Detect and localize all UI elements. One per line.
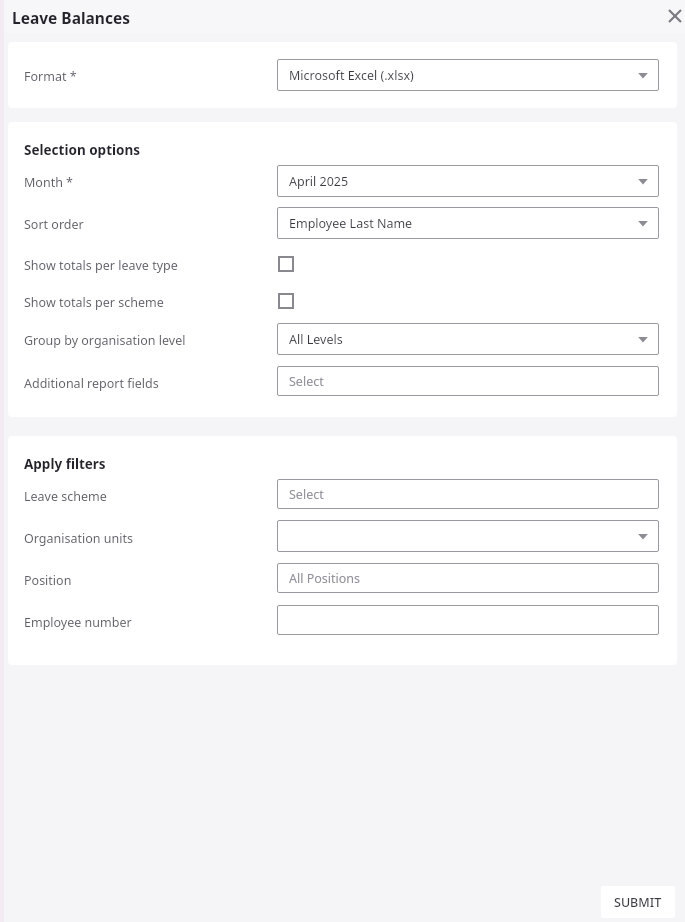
staticText: Sort order	[24, 216, 84, 233]
staticText: Leave Balances	[12, 7, 130, 28]
staticText: Show totals per leave type	[24, 257, 178, 274]
staticText: Select	[289, 486, 324, 503]
staticText: Format *	[24, 68, 77, 85]
staticText: Additional report fields	[24, 375, 159, 392]
staticText: Show totals per scheme	[24, 294, 164, 311]
button[interactable]: Input field	[277, 605, 659, 635]
staticText: April 2025	[289, 173, 349, 190]
staticText: Month *	[24, 174, 74, 191]
button[interactable]: Microsoft Excel (.xlsx)	[277, 59, 659, 91]
staticText: Microsoft Excel (.xlsx)	[289, 67, 414, 84]
staticText: SUBMIT	[614, 894, 662, 911]
staticText: All Levels	[289, 331, 343, 348]
staticText: Select	[289, 373, 324, 390]
staticText: Employee number	[24, 614, 132, 631]
staticText: Organisation units	[24, 530, 133, 547]
button[interactable]: Employee Last Name	[277, 207, 659, 239]
button[interactable]: All Levels	[277, 323, 659, 355]
button[interactable]: Checkbox	[278, 256, 294, 272]
button[interactable]: Close	[661, 2, 685, 30]
staticText: All Positions	[289, 570, 361, 587]
button[interactable]: All Positions	[277, 563, 659, 593]
button[interactable]: Select	[277, 366, 659, 396]
button[interactable]: Checkbox	[278, 293, 294, 309]
staticText: Position	[24, 572, 72, 589]
staticText: Leave scheme	[24, 488, 107, 505]
staticText: Employee Last Name	[289, 215, 413, 232]
staticText: Group by organisation level	[24, 332, 186, 349]
staticText: Apply filters	[24, 455, 106, 473]
button[interactable]: Input field	[277, 520, 659, 552]
button[interactable]: April 2025	[277, 165, 659, 197]
button[interactable]: SUBMIT	[601, 886, 675, 918]
button[interactable]: Select	[277, 479, 659, 509]
staticText: Selection options	[24, 141, 141, 159]
